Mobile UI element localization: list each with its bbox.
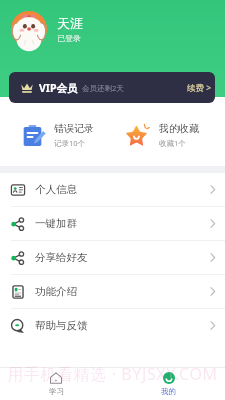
staticText: 续费 > — [187, 82, 212, 94]
staticText: 天涯 — [57, 15, 83, 31]
staticText: 记录10个 — [54, 138, 86, 148]
button[interactable]: 帮助与反馈 — [0, 309, 225, 342]
button[interactable]: 我的 — [112, 368, 225, 400]
button[interactable]: 一键加群 — [0, 207, 225, 240]
staticText: 会员还剩2天 — [82, 83, 124, 93]
staticText: 一键加群 — [35, 217, 77, 230]
staticText: 用手机看精选 · BYJSXY.COM — [7, 363, 218, 385]
staticText: 学习 — [49, 387, 64, 396]
staticText: 分享给好友 — [35, 251, 88, 264]
staticText: 个人信息 — [35, 183, 77, 196]
button[interactable]: 错误记录 — [0, 103, 112, 166]
button[interactable]: 个人信息 — [0, 173, 225, 206]
staticText: 已登录 — [57, 33, 81, 43]
button[interactable]: 分享给好友 — [0, 241, 225, 274]
button[interactable]: VIP会员 — [9, 72, 215, 103]
staticText: 我的收藏 — [159, 122, 199, 135]
button[interactable]: 我的收藏 — [112, 103, 225, 166]
button[interactable]: 学习 — [0, 368, 112, 400]
button[interactable]: 天涯 — [11, 11, 83, 47]
staticText: VIP会员 — [39, 81, 78, 95]
button[interactable]: 功能介绍 — [0, 275, 225, 308]
staticText: 错误记录 — [54, 122, 94, 135]
staticText: 功能介绍 — [35, 285, 77, 298]
staticText: 我的 — [161, 387, 176, 396]
staticText: 帮助与反馈 — [35, 319, 88, 332]
staticText: 收藏1个 — [159, 138, 186, 148]
